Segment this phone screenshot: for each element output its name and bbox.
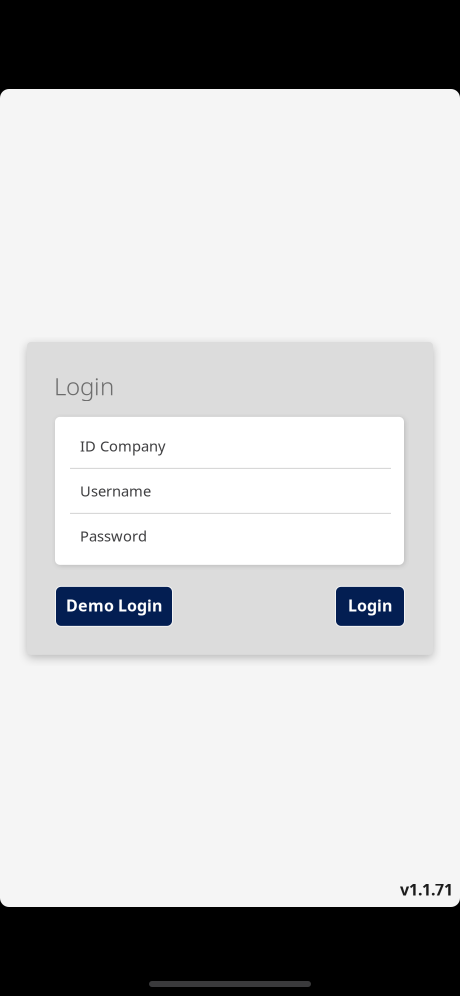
staticText: Demo Login <box>66 595 162 616</box>
staticText: Password <box>80 526 147 546</box>
staticText: v1.1.71 <box>400 879 453 900</box>
button[interactable]: Demo Login <box>55 586 173 627</box>
staticText: ID Company <box>80 436 165 456</box>
staticText: Login <box>54 370 114 402</box>
button[interactable]: Login <box>335 586 405 627</box>
staticText: Username <box>80 481 151 501</box>
staticText: Login <box>348 595 392 616</box>
